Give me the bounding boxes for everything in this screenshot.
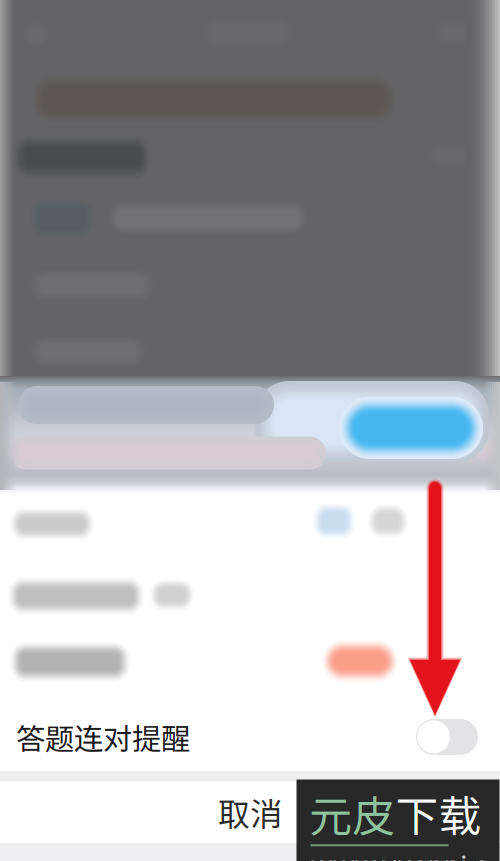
staticText: 元皮 <box>309 782 395 844</box>
staticText: 取消 <box>218 789 282 835</box>
button[interactable]: 取消 <box>0 781 500 842</box>
staticText: 答题连对提醒 <box>16 716 190 758</box>
staticText: www.yuanpi.com <box>310 848 498 861</box>
staticText: 下载 <box>395 782 481 844</box>
button[interactable]: 答题连对提醒 <box>0 703 500 771</box>
